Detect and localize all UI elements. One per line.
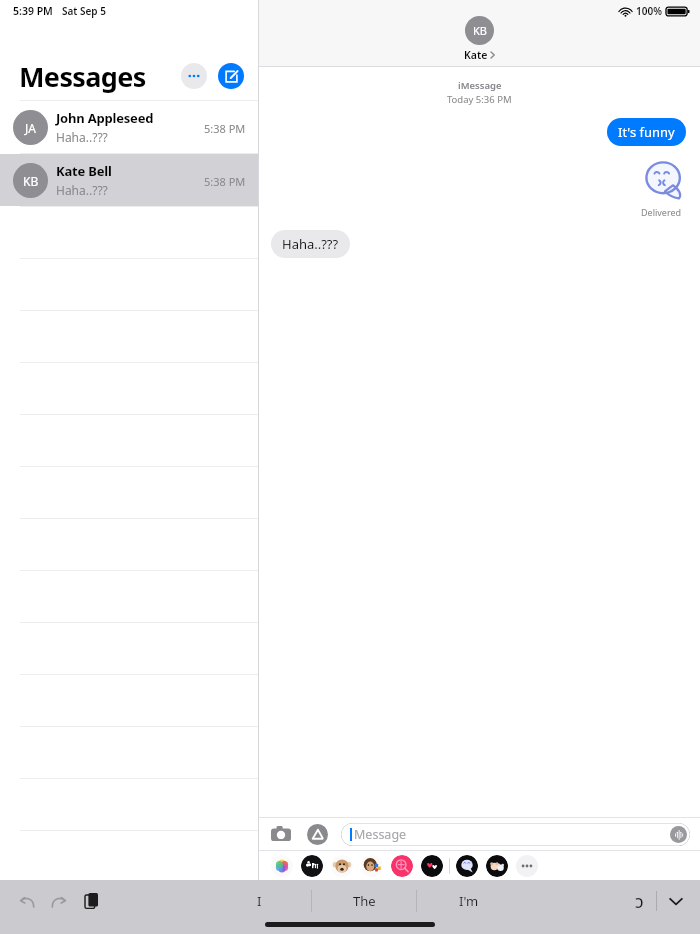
button[interactable]: App Store <box>305 822 329 846</box>
staticText: 100% <box>636 4 662 18</box>
button[interactable]: iMessage app <box>361 855 383 877</box>
staticText: KB <box>473 23 487 38</box>
staticText: Haha..??? <box>56 182 108 198</box>
button[interactable]: iMessage app <box>456 855 478 877</box>
staticText: Delivered <box>641 206 682 218</box>
button[interactable]: Audio message <box>670 826 687 843</box>
staticText: Messages <box>19 58 146 95</box>
staticText: 5:39 PM <box>13 4 53 18</box>
button[interactable]: I'm <box>417 884 521 918</box>
button[interactable] <box>642 158 686 202</box>
button[interactable]: iMessage app <box>271 855 293 877</box>
staticText: I'm <box>459 892 479 910</box>
staticText: Kate <box>464 48 488 62</box>
button[interactable]: Camera <box>269 822 293 846</box>
staticText: John Appleseed <box>56 109 154 127</box>
staticText: Kate Bell <box>56 162 112 180</box>
button[interactable]: JA <box>0 101 258 153</box>
button[interactable]: It's funny <box>607 118 686 146</box>
button[interactable]: KB <box>465 16 494 45</box>
button[interactable]: Haha..??? <box>271 230 350 258</box>
button[interactable]: Redo <box>46 888 72 914</box>
button[interactable]: iMessage app <box>331 855 353 877</box>
staticText: Haha..??? <box>56 129 108 145</box>
staticText: I <box>257 892 262 910</box>
staticText: iMessage <box>458 79 502 92</box>
staticText: Sat Sep 5 <box>62 4 106 18</box>
staticText: Message <box>354 826 407 843</box>
staticText: 5:38 PM <box>204 121 246 136</box>
staticText: Today 5:36 PM <box>447 93 512 106</box>
staticText: It's funny <box>618 123 675 141</box>
button[interactable]: Handwriting <box>625 887 653 915</box>
staticText: 5:38 PM <box>204 174 246 189</box>
button[interactable]: Paste <box>78 888 104 914</box>
staticText: KB <box>23 173 39 189</box>
button[interactable]: Message <box>341 823 690 846</box>
button[interactable]: KB <box>0 154 258 206</box>
button[interactable]: More apps <box>516 855 538 877</box>
button[interactable]: The <box>312 884 416 918</box>
staticText: ɔ <box>635 889 644 914</box>
staticText: JA <box>25 120 36 136</box>
button[interactable]: I <box>207 884 311 918</box>
staticText: Haha..??? <box>282 235 339 253</box>
button[interactable]: iMessage app <box>301 855 323 877</box>
button[interactable]: More options <box>181 63 207 89</box>
button[interactable]: Hide keyboard <box>662 887 690 915</box>
button[interactable]: iMessage app <box>421 855 443 877</box>
button[interactable]: Undo <box>14 888 40 914</box>
button[interactable]: iMessage app <box>486 855 508 877</box>
button[interactable]: New message <box>218 63 244 89</box>
button[interactable]: iMessage app <box>391 855 413 877</box>
staticText: The <box>353 892 376 910</box>
